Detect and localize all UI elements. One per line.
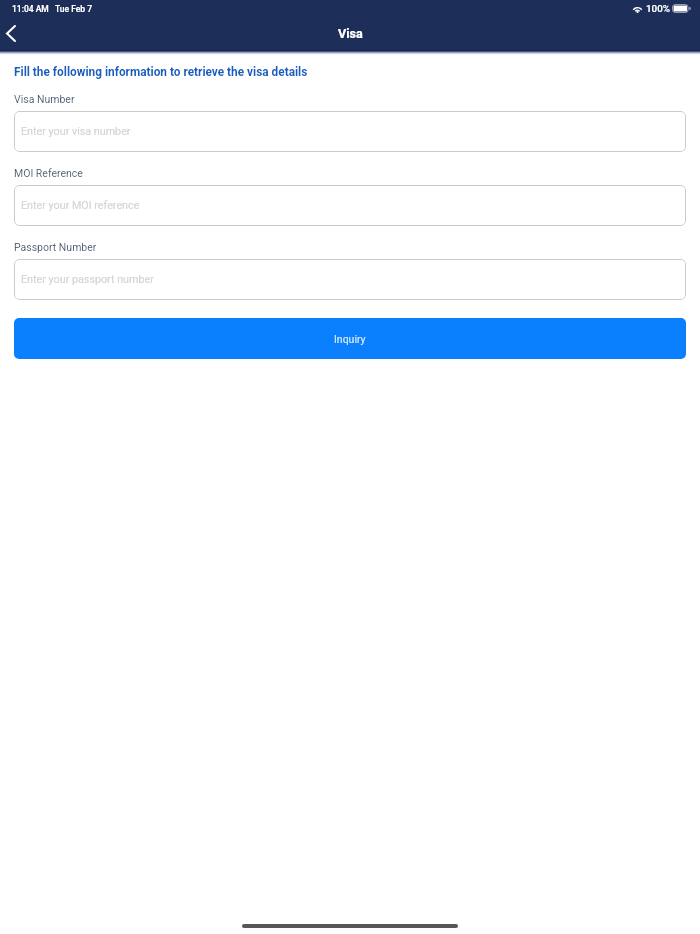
staticText: Visa Number: [14, 93, 75, 105]
staticText: Passport Number: [14, 241, 97, 253]
button[interactable]: Enter your visa number: [14, 111, 686, 152]
staticText: Fill the following information to retrie…: [14, 65, 308, 79]
staticText: 100%: [646, 3, 670, 14]
staticText: Enter your passport number: [21, 273, 154, 286]
staticText: 11:04 AM: [12, 4, 49, 14]
staticText: Inquiry: [334, 333, 366, 345]
button[interactable]: Enter your MOI reference: [14, 185, 686, 226]
staticText: Enter your visa number: [21, 125, 131, 138]
button[interactable]: Back: [0, 17, 32, 50]
button[interactable]: Inquiry: [14, 318, 686, 359]
staticText: Tue Feb 7: [55, 4, 93, 14]
staticText: Visa: [338, 26, 363, 41]
staticText: MOI Reference: [14, 167, 83, 179]
staticText: Enter your MOI reference: [21, 199, 140, 212]
button[interactable]: Enter your passport number: [14, 259, 686, 300]
